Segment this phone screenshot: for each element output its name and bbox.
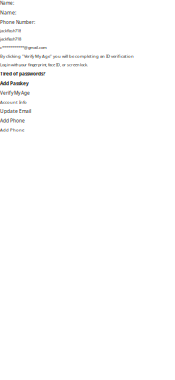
staticText: Update Email [0, 108, 31, 114]
staticText: Add Phone [0, 117, 25, 124]
staticText: Verify My Age [0, 90, 30, 96]
staticText: Account Info [0, 99, 27, 105]
staticText: Name: [0, 9, 16, 16]
staticText: Add Passkey [0, 80, 29, 86]
staticText: jackflash718 [0, 28, 21, 33]
staticText: c***********@gmail.com [0, 45, 47, 50]
staticText: Add Phone [0, 127, 24, 133]
staticText: Log in with your fingerprint, face ID, o… [0, 62, 88, 67]
staticText: Name: [0, 0, 14, 6]
staticText: By clicking "Verify My Age" you will be … [0, 53, 134, 59]
staticText: Phone Number: [0, 19, 35, 25]
staticText: jackflash718 [0, 36, 21, 42]
staticText: Tired of passwords? [0, 70, 45, 77]
